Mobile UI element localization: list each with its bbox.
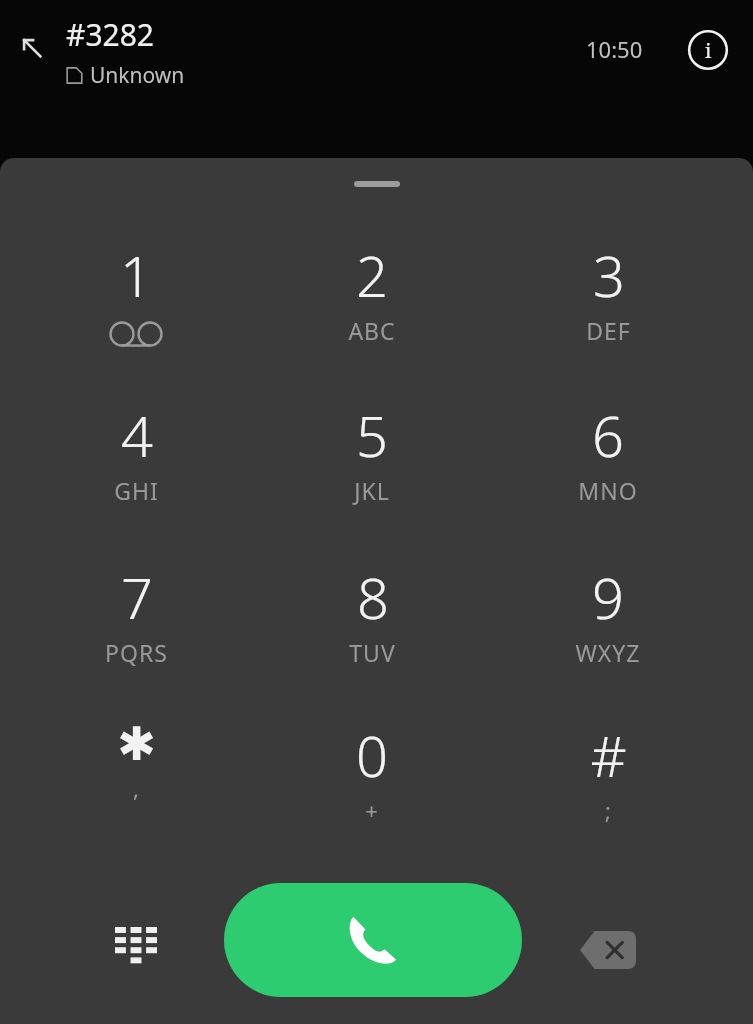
button[interactable]: # — [530, 717, 686, 837]
staticText: 0 — [356, 717, 388, 793]
button[interactable]: 3 — [530, 237, 686, 357]
staticText: WXYZ — [575, 637, 641, 668]
staticText: 7 — [121, 559, 153, 635]
staticText: JKL — [354, 475, 390, 506]
staticText: 4 — [121, 397, 153, 473]
button[interactable]: 6 — [530, 397, 686, 517]
button[interactable]: 5 — [294, 397, 450, 517]
staticText: 8 — [357, 559, 389, 635]
staticText: ABC — [348, 315, 396, 346]
button[interactable]: 9 — [530, 559, 686, 679]
staticText: 3 — [593, 237, 625, 313]
staticText: 2 — [356, 237, 388, 313]
button[interactable]: Call — [224, 883, 522, 997]
staticText: #3282 — [66, 14, 155, 55]
button[interactable]: ✱ — [58, 717, 214, 837]
button[interactable]: 2 — [294, 237, 450, 357]
button[interactable]: Outgoing call — [10, 26, 54, 70]
button[interactable]: Backspace — [568, 910, 648, 990]
button[interactable]: 4 — [58, 397, 214, 517]
button[interactable]: 1 — [58, 237, 214, 357]
staticText: , — [133, 773, 140, 803]
staticText: GHI — [114, 475, 159, 506]
staticText: + — [365, 795, 379, 825]
staticText: 9 — [592, 559, 624, 635]
button[interactable]: 8 — [294, 559, 450, 679]
button[interactable]: Keypad — [96, 910, 176, 990]
staticText: DEF — [586, 315, 631, 346]
button[interactable]: 7 — [58, 559, 214, 679]
button[interactable]: 0 — [294, 717, 450, 837]
staticText: Unknown — [90, 61, 185, 90]
staticText: 1 — [120, 237, 152, 313]
staticText: PQRS — [105, 637, 168, 668]
staticText: MNO — [578, 475, 638, 506]
staticText: 6 — [592, 397, 624, 473]
staticText: 10:50 — [586, 34, 643, 64]
staticText: TUV — [349, 637, 396, 668]
staticText: ✱ — [117, 717, 156, 771]
staticText: 5 — [356, 397, 388, 473]
button[interactable]: Call details — [684, 26, 732, 74]
staticText: i — [705, 37, 712, 64]
staticText: # — [590, 717, 627, 793]
staticText: ; — [605, 795, 612, 825]
